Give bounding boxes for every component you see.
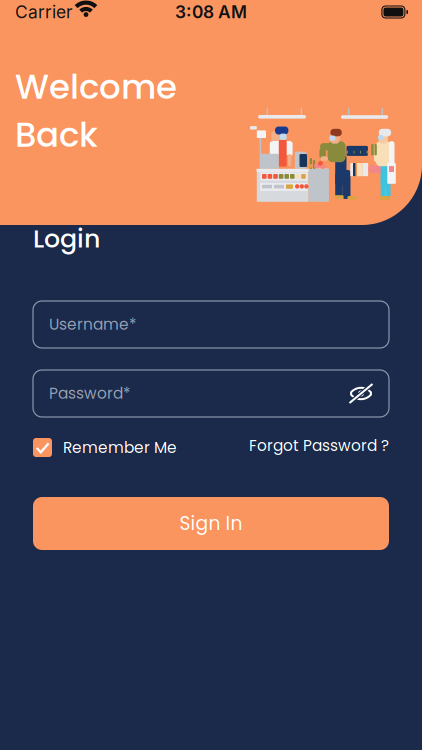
- staticText: Back: [15, 111, 98, 159]
- staticText: Carrier: [15, 1, 73, 22]
- button[interactable]: Sign In: [33, 497, 389, 550]
- staticText: Forgot Password ?: [249, 435, 389, 456]
- staticText: Sign In: [179, 510, 242, 536]
- staticText: Welcome: [15, 63, 177, 111]
- staticText: Username*: [49, 314, 136, 335]
- button[interactable]: Remember Me: [33, 435, 183, 461]
- button[interactable]: Forgot Password ?: [249, 435, 389, 456]
- button[interactable]: Show password: [344, 376, 378, 410]
- staticText: 3:08 AM: [175, 1, 247, 22]
- staticText: Password*: [49, 383, 130, 404]
- staticText: Remember Me: [63, 437, 177, 458]
- staticText: Login: [33, 221, 100, 256]
